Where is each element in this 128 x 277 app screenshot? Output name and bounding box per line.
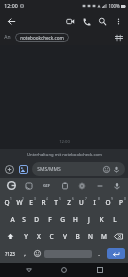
button[interactable]: SMS/MMS bbox=[32, 162, 125, 176]
button[interactable]: P bbox=[114, 195, 127, 210]
staticText: 4 bbox=[46, 197, 48, 201]
staticText: L bbox=[113, 215, 117, 224]
button[interactable]: Y bbox=[19, 229, 32, 244]
button[interactable]: notebookcheck.com bbox=[15, 33, 69, 42]
staticText: E bbox=[29, 198, 33, 207]
button[interactable]: F bbox=[43, 212, 56, 227]
staticText: 12:00 bbox=[4, 2, 18, 9]
button[interactable]: T bbox=[49, 195, 62, 210]
button[interactable]: G bbox=[56, 212, 69, 227]
button[interactable]: , bbox=[19, 246, 31, 261]
button[interactable]: D bbox=[30, 212, 43, 227]
staticText: H bbox=[73, 215, 78, 224]
staticText: 5 bbox=[59, 197, 61, 201]
button[interactable]: Backspace bbox=[110, 229, 127, 244]
button[interactable]: Voice input bbox=[110, 179, 123, 192]
staticText: 6 bbox=[72, 197, 74, 201]
button[interactable]: S bbox=[18, 212, 30, 227]
button[interactable]: O bbox=[101, 195, 114, 210]
button[interactable]: . bbox=[93, 246, 105, 261]
staticText: Z bbox=[67, 198, 71, 207]
staticText: A bbox=[10, 215, 15, 224]
staticText: ?123 bbox=[5, 251, 15, 257]
staticText: Y bbox=[24, 232, 28, 241]
button[interactable]: Search bbox=[94, 13, 110, 29]
staticText: 0 bbox=[124, 197, 126, 201]
staticText: O bbox=[105, 198, 111, 207]
button[interactable]: E bbox=[25, 195, 37, 210]
staticText: G bbox=[60, 215, 65, 224]
button[interactable]: Stickers bbox=[22, 179, 35, 192]
button[interactable]: C bbox=[45, 229, 58, 244]
button[interactable]: More options bbox=[110, 13, 126, 29]
staticText: N bbox=[88, 232, 93, 241]
staticText: . bbox=[98, 250, 100, 258]
staticText: F bbox=[48, 215, 52, 224]
button[interactable]: Enter bbox=[107, 248, 125, 259]
staticText: C bbox=[49, 232, 54, 241]
button[interactable]: Q bbox=[1, 195, 13, 210]
staticText: V bbox=[63, 232, 67, 241]
staticText: D bbox=[34, 215, 39, 224]
button[interactable]: W bbox=[13, 195, 25, 210]
button[interactable]: Back bbox=[3, 13, 19, 29]
button[interactable]: H bbox=[69, 212, 82, 227]
button[interactable]: ?123 bbox=[1, 246, 19, 261]
button[interactable]: J bbox=[82, 212, 95, 227]
staticText: , bbox=[24, 250, 26, 258]
staticText: W bbox=[16, 198, 23, 207]
button[interactable]: Back bbox=[22, 263, 36, 277]
staticText: B bbox=[75, 232, 80, 241]
button[interactable]: B bbox=[71, 229, 84, 244]
button[interactable]: Z bbox=[62, 195, 75, 210]
button[interactable]: Recents bbox=[93, 263, 107, 277]
staticText: 7 bbox=[85, 197, 87, 201]
staticText: SMS/MMS bbox=[37, 166, 61, 173]
button[interactable]: U bbox=[75, 195, 88, 210]
button[interactable]: I bbox=[88, 195, 101, 210]
staticText: An bbox=[4, 34, 11, 41]
staticText: 100% bbox=[108, 3, 120, 9]
button[interactable]: R bbox=[37, 195, 49, 210]
button[interactable]: Home bbox=[57, 263, 71, 277]
button[interactable]: N bbox=[84, 229, 97, 244]
staticText: GIF bbox=[43, 183, 50, 189]
staticText: R bbox=[41, 198, 46, 207]
button[interactable]: L bbox=[108, 212, 121, 227]
button[interactable]: K bbox=[95, 212, 108, 227]
staticText: I bbox=[93, 198, 96, 207]
button[interactable]: Google search bbox=[5, 179, 18, 192]
staticText: K bbox=[99, 215, 104, 224]
staticText: notebookcheck.com bbox=[20, 35, 64, 41]
staticText: M bbox=[101, 232, 107, 241]
staticText: 2 bbox=[22, 197, 24, 201]
staticText: Unterhaltung mit notebookcheck.com bbox=[27, 152, 102, 158]
button[interactable]: Video call bbox=[62, 13, 78, 29]
button[interactable]: Add contact bbox=[112, 31, 126, 45]
staticText: Q bbox=[4, 198, 10, 207]
staticText: S bbox=[22, 215, 26, 224]
staticText: X bbox=[37, 232, 41, 241]
button[interactable]: Emoji bbox=[31, 246, 43, 261]
staticText: 12:00 bbox=[59, 139, 70, 145]
button[interactable]: GIF bbox=[40, 179, 53, 192]
button[interactable]: Gallery bbox=[17, 163, 30, 176]
button[interactable]: Shift bbox=[1, 229, 19, 244]
button[interactable]: Call bbox=[78, 13, 94, 29]
staticText: P bbox=[119, 198, 123, 207]
staticText: 8 bbox=[98, 197, 100, 201]
staticText: 3 bbox=[34, 197, 36, 201]
button[interactable]: Clipboard bbox=[58, 179, 71, 192]
staticText: 9 bbox=[111, 197, 113, 201]
button[interactable]: A bbox=[6, 212, 18, 227]
button[interactable]: More bbox=[93, 179, 106, 192]
button[interactable]: Settings bbox=[75, 179, 88, 192]
button[interactable]: M bbox=[97, 229, 110, 244]
button[interactable]: X bbox=[32, 229, 45, 244]
button[interactable]: Add attachment bbox=[3, 163, 16, 176]
staticText: 1 bbox=[10, 197, 12, 201]
staticText: T bbox=[54, 198, 58, 207]
button[interactable]: V bbox=[58, 229, 71, 244]
staticText: J bbox=[88, 215, 90, 224]
